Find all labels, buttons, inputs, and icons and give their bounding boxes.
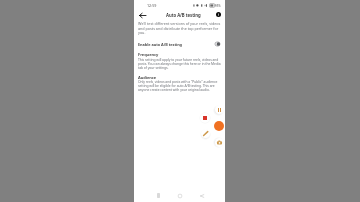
staticText: posts. You can always change this here o… [138, 61, 221, 66]
staticText: Audience [138, 75, 157, 80]
staticText: We'll test different versions of your re… [138, 21, 221, 26]
button[interactable]: Recent apps [153, 190, 164, 201]
button[interactable]: Pause recording [215, 105, 224, 114]
button[interactable]: Recording controls [214, 121, 224, 131]
staticText: Frequency [138, 52, 159, 57]
staticText: 95% [215, 4, 221, 8]
button[interactable]: Screenshot [215, 138, 224, 147]
button[interactable]: Home [174, 190, 185, 201]
staticText: This setting will apply to your future r… [138, 57, 219, 62]
button[interactable]: Stop recording [200, 113, 210, 123]
staticText: and posts and distribute the top perform… [138, 26, 219, 31]
staticText: Only reels, videos and posts with a "Pub… [138, 79, 218, 84]
staticText: Enable auto A/B testing [138, 42, 182, 47]
button[interactable]: Draw [201, 129, 210, 138]
button[interactable]: Information [213, 9, 224, 20]
staticText: setting will be eligible for auto A/B te… [138, 83, 215, 88]
button[interactable]: Back [196, 190, 207, 201]
staticText: anyone create content with your original… [138, 87, 210, 92]
staticText: Auto A/B testing [166, 12, 201, 18]
staticText: 12:59 [147, 3, 157, 8]
staticText: tab of your settings. [138, 65, 169, 70]
button[interactable]: Enable auto A/B testing [134, 40, 225, 48]
staticText: you. [138, 30, 146, 35]
button[interactable]: Back [136, 9, 148, 21]
